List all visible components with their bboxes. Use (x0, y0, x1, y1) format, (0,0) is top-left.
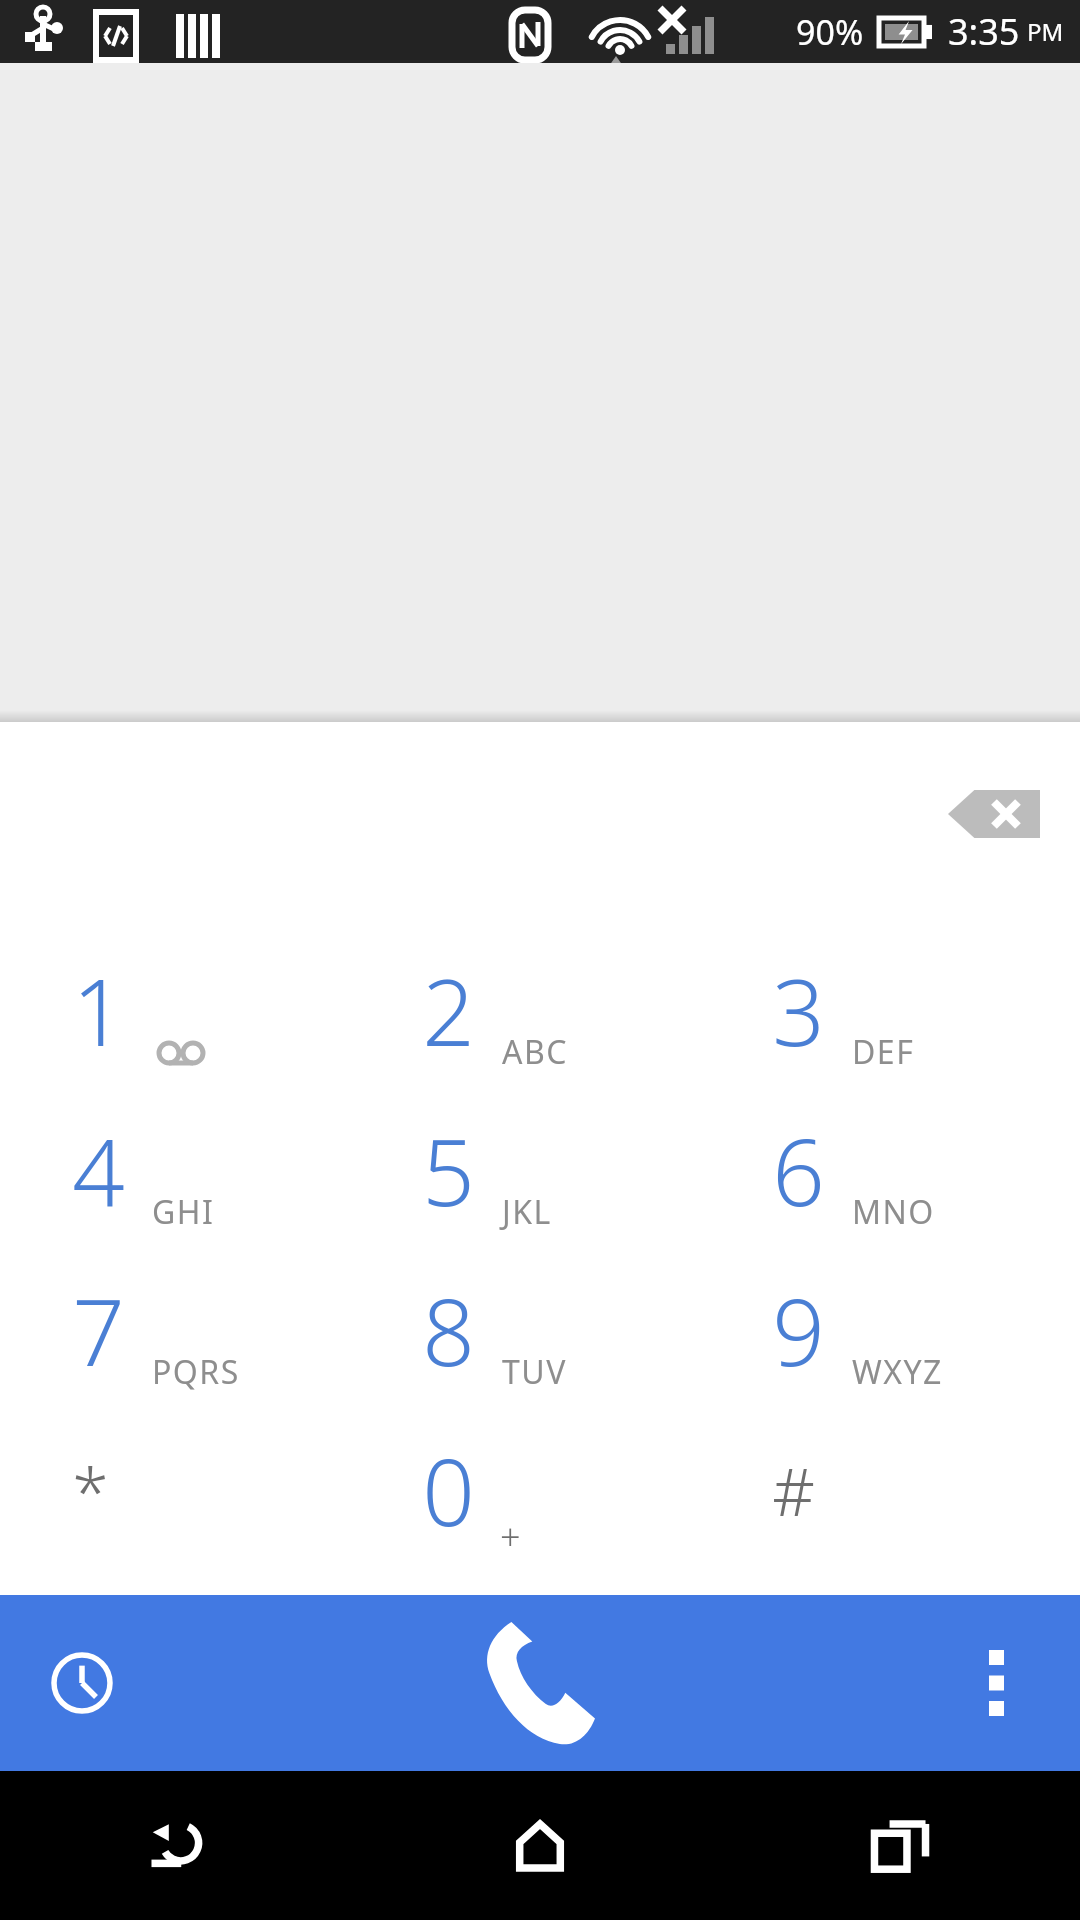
staticText: MNO (852, 1190, 935, 1234)
button[interactable]: 1 (20, 932, 360, 1088)
staticText: GHI (152, 1190, 215, 1234)
staticText: PQRS (152, 1350, 240, 1394)
button[interactable]: 4 (20, 1092, 360, 1248)
button[interactable]: Home (360, 1771, 720, 1920)
staticText: TUV (502, 1350, 567, 1394)
staticText: JKL (502, 1190, 552, 1234)
staticText: * (72, 1445, 109, 1535)
staticText: 2 (422, 948, 475, 1073)
staticText: 3:35 (948, 7, 1020, 56)
staticText: 1 (72, 948, 125, 1073)
button[interactable]: 3 (720, 932, 1060, 1088)
staticText: 3 (772, 948, 825, 1073)
button[interactable]: 0 (370, 1412, 710, 1568)
staticText: 90% (796, 9, 864, 55)
button[interactable]: Call (460, 1603, 620, 1763)
button[interactable]: Back (0, 1771, 360, 1920)
staticText: 6 (772, 1108, 825, 1233)
button[interactable]: Recent apps (720, 1771, 1080, 1920)
staticText: 8 (422, 1268, 475, 1393)
button[interactable]: More options (942, 1629, 1050, 1737)
button[interactable]: Backspace (948, 790, 1040, 838)
button[interactable]: 2 (370, 932, 710, 1088)
staticText: 9 (772, 1268, 825, 1393)
staticText: DEF (852, 1030, 915, 1074)
staticText: 7 (72, 1268, 125, 1393)
staticText: WXYZ (852, 1350, 943, 1394)
button[interactable]: * (20, 1412, 360, 1568)
staticText: PM (1027, 15, 1064, 48)
button[interactable]: Call history (28, 1629, 136, 1737)
button[interactable]: 7 (20, 1252, 360, 1408)
button[interactable]: 6 (720, 1092, 1060, 1248)
staticText: 5 (422, 1108, 475, 1233)
staticText: 4 (72, 1108, 125, 1233)
staticText: + (500, 1512, 521, 1561)
staticText: ABC (502, 1030, 568, 1074)
staticText: 0 (422, 1428, 475, 1553)
button[interactable]: 9 (720, 1252, 1060, 1408)
staticText: # (772, 1445, 815, 1535)
button[interactable]: # (720, 1412, 1060, 1568)
button[interactable]: 5 (370, 1092, 710, 1248)
button[interactable]: 8 (370, 1252, 710, 1408)
